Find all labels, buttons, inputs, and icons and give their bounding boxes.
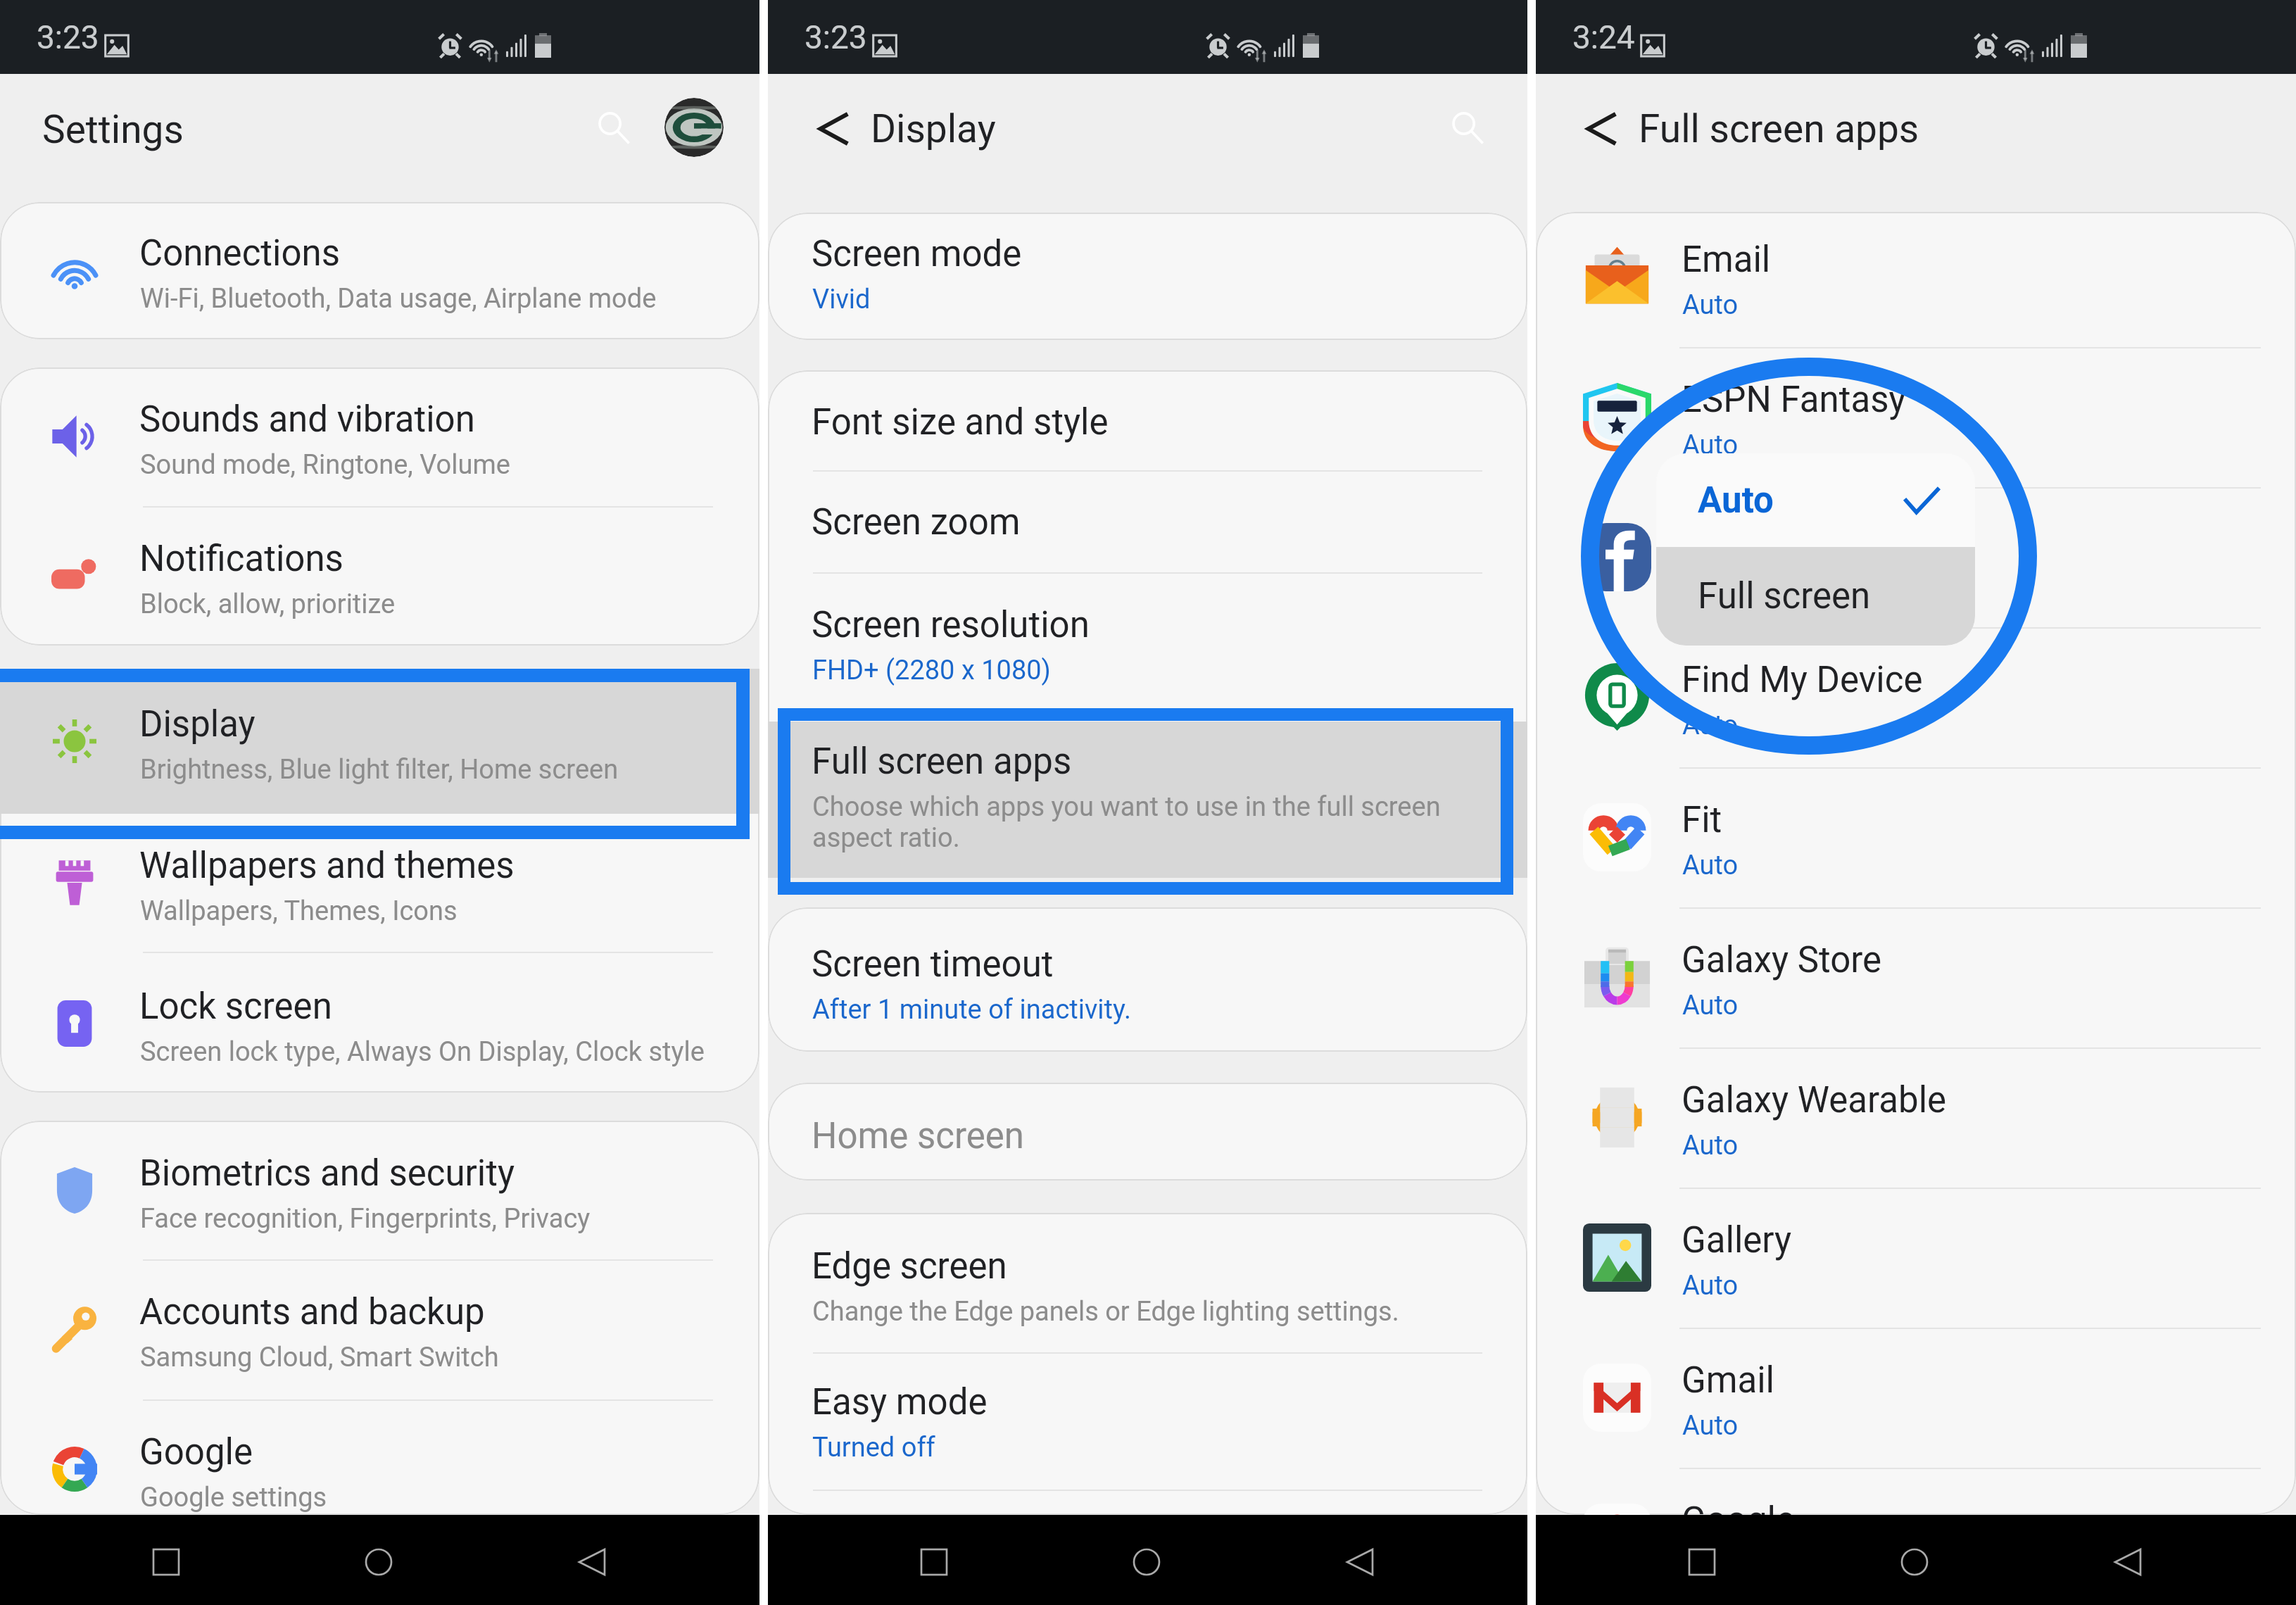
staticText: Accounts and backup (139, 1291, 485, 1333)
staticText: Sounds and vibration (139, 398, 475, 441)
button[interactable]: Profile (664, 98, 724, 157)
button[interactable]: Display (0, 669, 759, 814)
staticText: Connections (139, 232, 341, 275)
staticText: Full screen apps (1639, 106, 1919, 151)
button[interactable]: Full screen apps (768, 722, 1527, 878)
staticText: Google settings (140, 1482, 327, 1513)
staticText: Gallery (1682, 1219, 1792, 1261)
button[interactable]: Edge screen (768, 1213, 1527, 1352)
staticText: Font size and style (812, 401, 1109, 443)
button[interactable]: Connections (0, 202, 759, 339)
button[interactable]: Back (818, 113, 850, 145)
staticText: Wi-Fi, Bluetooth, Data usage, Airplane m… (140, 283, 657, 315)
staticText: Edge screen (812, 1245, 1007, 1288)
staticText: 3:23 (37, 18, 99, 56)
staticText: Samsung Cloud, Smart Switch (140, 1342, 499, 1373)
button[interactable]: Back (572, 1542, 612, 1582)
button[interactable]: Galaxy Store (1536, 907, 2296, 1047)
button[interactable]: Auto (1656, 453, 1975, 547)
button[interactable]: Font size and style (768, 370, 1527, 470)
button[interactable]: Facebook (1536, 487, 2296, 627)
staticText: Auto (1682, 1130, 1739, 1162)
staticText: Auto (1682, 429, 1739, 461)
staticText: Easy mode (812, 1381, 988, 1423)
staticText: Home screen (812, 1115, 1024, 1157)
staticText: Gmail (1682, 1359, 1775, 1402)
staticText: Auto (1682, 710, 1739, 741)
button[interactable]: Find My Device (1536, 627, 2296, 767)
button[interactable]: Gmail (1536, 1328, 2296, 1468)
button[interactable]: Back (2108, 1542, 2147, 1582)
staticText: Wallpapers and themes (139, 845, 515, 887)
staticText: Google (1682, 1499, 1795, 1542)
button[interactable]: Gallery (1536, 1188, 2296, 1328)
staticText: Biometrics and security (139, 1152, 515, 1195)
staticText: Auto (1682, 569, 1739, 601)
staticText: Auto (1698, 479, 1774, 522)
button[interactable]: Screen resolution (768, 572, 1527, 722)
staticText: ESPN Fantasy (1682, 379, 1906, 421)
button[interactable]: Easy mode (768, 1352, 1527, 1490)
staticText: Change the Edge panels or Edge lighting … (812, 1296, 1399, 1328)
button[interactable]: Search (583, 98, 645, 160)
button[interactable]: Accounts and backup (0, 1259, 759, 1399)
button[interactable]: Recents (146, 1542, 186, 1582)
staticText: Screen lock type, Always On Display, Clo… (140, 1036, 705, 1068)
staticText: Auto (1682, 1410, 1739, 1442)
button[interactable]: Lock screen (0, 952, 759, 1093)
button[interactable]: Galaxy Wearable (1536, 1047, 2296, 1188)
staticText: Auto (1682, 850, 1739, 881)
staticText: Screen resolution (812, 604, 1090, 646)
staticText: Screen mode (812, 233, 1022, 275)
staticText: Lock screen (139, 986, 332, 1028)
button[interactable]: Email (1536, 207, 2296, 347)
staticText: Wallpapers, Themes, Icons (140, 895, 458, 927)
staticText: Choose which apps you want to use in the… (812, 791, 1441, 853)
staticText: Galaxy Wearable (1682, 1079, 1947, 1121)
staticText: Display (139, 703, 256, 745)
staticText: Auto (1682, 990, 1739, 1021)
button[interactable]: Wallpapers and themes (0, 814, 759, 952)
staticText: Auto (1682, 289, 1739, 321)
button[interactable]: Biometrics and security (0, 1121, 759, 1259)
button[interactable]: Home (359, 1542, 398, 1582)
staticText: Google (139, 1431, 253, 1473)
button[interactable]: Screen mode (768, 213, 1527, 340)
button[interactable]: Back (1340, 1542, 1380, 1582)
button[interactable]: Home (1127, 1542, 1166, 1582)
button[interactable]: ESPN Fantasy (1536, 347, 2296, 487)
button[interactable]: Home (1895, 1542, 1934, 1582)
button[interactable]: Recents (914, 1542, 954, 1582)
staticText: 3:23 (805, 18, 867, 56)
staticText: 3:24 (1572, 18, 1635, 56)
staticText: Email (1682, 239, 1771, 281)
staticText: Find My Device (1682, 659, 1923, 701)
staticText: Face recognition, Fingerprints, Privacy (140, 1203, 591, 1235)
staticText: Facebook (1682, 519, 1838, 561)
button[interactable]: Home screen (768, 1083, 1527, 1181)
button[interactable]: Fit (1536, 767, 2296, 907)
staticText: Settings (42, 107, 184, 152)
button[interactable]: Notifications (0, 506, 759, 646)
staticText: Display (871, 106, 996, 151)
button[interactable]: Sounds and vibration (0, 367, 759, 506)
staticText: Vivid (812, 284, 871, 315)
staticText: After 1 minute of inactivity. (812, 994, 1132, 1026)
button[interactable]: Google (0, 1399, 759, 1515)
staticText: Notifications (139, 538, 343, 580)
button[interactable]: Google (1536, 1468, 2296, 1605)
button[interactable]: Recents (1682, 1542, 1722, 1582)
button[interactable]: Screen timeout (768, 907, 1527, 1052)
staticText: Screen timeout (812, 943, 1054, 986)
staticText: Sound mode, Ringtone, Volume (140, 449, 510, 481)
button[interactable]: Search (1437, 98, 1499, 160)
staticText: FHD+ (2280 x 1080) (812, 655, 1051, 686)
button[interactable]: Back (1586, 113, 1618, 145)
staticText: Auto (1682, 1550, 1739, 1582)
button[interactable]: Screen zoom (768, 470, 1527, 572)
staticText: Full screen apps (812, 741, 1072, 783)
staticText: Brightness, Blue light filter, Home scre… (140, 754, 619, 786)
staticText: Auto (1682, 1270, 1739, 1302)
button[interactable]: Full screen (1656, 547, 1975, 646)
staticText: Block, allow, prioritize (140, 588, 396, 620)
